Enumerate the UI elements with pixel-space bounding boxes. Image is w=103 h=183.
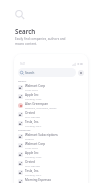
staticText: Tesla, Inc. bbox=[25, 169, 40, 173]
staticText: Research, Economist, Books bbox=[25, 106, 57, 109]
staticText: Walmart Subscriptions bbox=[25, 133, 58, 137]
staticText: Tesla, Inc. bbox=[25, 120, 40, 124]
staticText: NASDAQ: TSLA bbox=[25, 124, 42, 127]
button[interactable]: Apple Inc bbox=[14, 92, 88, 101]
staticText: Apple Inc bbox=[25, 93, 39, 97]
staticText: Walmart Corp bbox=[25, 142, 46, 146]
staticText: Easily find companies, authors and macro… bbox=[15, 37, 66, 46]
staticText: Product bbox=[25, 137, 34, 140]
staticText: Morning Espresso bbox=[25, 178, 52, 182]
button[interactable]: Search bbox=[18, 68, 76, 77]
staticText: Alan Greenspan bbox=[25, 102, 49, 106]
staticText: Walmart Corp bbox=[25, 84, 46, 88]
button[interactable]: Walmart Corp bbox=[14, 141, 88, 150]
button[interactable]: Apple Inc bbox=[14, 150, 88, 159]
button[interactable]: Orsted bbox=[14, 110, 88, 119]
button[interactable]: Search bbox=[15, 10, 25, 20]
staticText: NASDAQ: TSLA bbox=[25, 173, 42, 176]
staticText: SUGGESTED bbox=[18, 129, 31, 132]
staticText: NASDAQ: AAPL bbox=[25, 97, 42, 100]
button[interactable]: Morning Espresso bbox=[14, 177, 88, 183]
staticText: Search bbox=[15, 27, 36, 35]
staticText: Apple Inc bbox=[25, 151, 39, 155]
button[interactable]: Orsted bbox=[14, 159, 88, 168]
staticText: 9:41 bbox=[20, 62, 26, 66]
button[interactable]: Tesla, Inc. bbox=[14, 168, 88, 177]
button[interactable]: Walmart Subscriptions bbox=[14, 132, 88, 141]
staticText: RECENT bbox=[18, 80, 27, 83]
staticText: Orsted bbox=[25, 111, 35, 115]
button[interactable]: Tesla, Inc. bbox=[14, 119, 88, 128]
button[interactable]: Profile bbox=[78, 70, 84, 76]
staticText: NYSE: WMT bbox=[25, 146, 38, 149]
staticText: CPH: ORSTED bbox=[25, 115, 41, 118]
staticText: NYSE: WMT bbox=[25, 88, 38, 91]
staticText: Search bbox=[25, 71, 35, 75]
staticText: CPH: ORSTED bbox=[25, 164, 41, 167]
staticText: Orsted bbox=[25, 160, 35, 164]
button[interactable]: Walmart Corp bbox=[14, 83, 88, 92]
staticText: NASDAQ: AAPL bbox=[25, 155, 42, 158]
button[interactable]: Alan Greenspan bbox=[14, 101, 88, 110]
